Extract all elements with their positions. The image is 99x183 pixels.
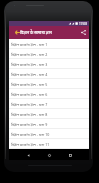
staticText: विज्ञान सामान्य ज्ञान - भाग 1 [11,42,48,47]
button[interactable]: विज्ञान सामान्य ज्ञान - भाग 7 [9,99,89,109]
button[interactable]: Back [23,150,33,160]
button[interactable]: Back [12,26,22,39]
staticText: विज्ञान सामान्य ज्ञान - भाग 6 [11,92,48,97]
button[interactable]: विज्ञान सामान्य ज्ञान - भाग 8 [9,109,89,119]
button[interactable]: विज्ञान सामान्य ज्ञान - भाग 9 [9,119,89,129]
button[interactable]: विज्ञान सामान्य ज्ञान - भाग 5 [9,79,89,89]
staticText: विज्ञान सामान्य ज्ञान - भाग 2 [11,52,48,57]
button[interactable]: Home [44,150,54,160]
staticText: 17:08 [79,22,87,26]
staticText: विज्ञान सामान्य ज्ञान - भाग 5 [11,82,48,87]
staticText: विज्ञान सामान्य ज्ञान - भाग 3 [11,62,48,67]
button[interactable]: Share [78,26,89,39]
staticText: विज्ञान सामान्य ज्ञान - भाग 10 [11,132,50,137]
staticText: विज्ञान सामान्य ज्ञान - भाग 11 [11,142,50,147]
button[interactable]: विज्ञान सामान्य ज्ञान - भाग 4 [9,69,89,79]
staticText: विज्ञान सामान्य ज्ञान - भाग 9 [11,122,48,127]
staticText: विज्ञान के सामान्य ज्ञान [20,30,52,35]
button[interactable]: विज्ञान सामान्य ज्ञान - भाग 11 [9,139,89,149]
button[interactable]: विज्ञान सामान्य ज्ञान - भाग 3 [9,59,89,69]
button[interactable]: Recents [65,150,75,160]
staticText: विज्ञान सामान्य ज्ञान - भाग 7 [11,102,48,107]
button[interactable]: विज्ञान सामान्य ज्ञान - भाग 6 [9,89,89,99]
button[interactable]: विज्ञान सामान्य ज्ञान - भाग 10 [9,129,89,139]
staticText: विज्ञान सामान्य ज्ञान - भाग 8 [11,112,48,117]
staticText: विज्ञान सामान्य ज्ञान - भाग 4 [11,72,48,77]
button[interactable]: विज्ञान सामान्य ज्ञान - भाग 1 [9,39,89,49]
button[interactable]: विज्ञान सामान्य ज्ञान - भाग 2 [9,49,89,59]
